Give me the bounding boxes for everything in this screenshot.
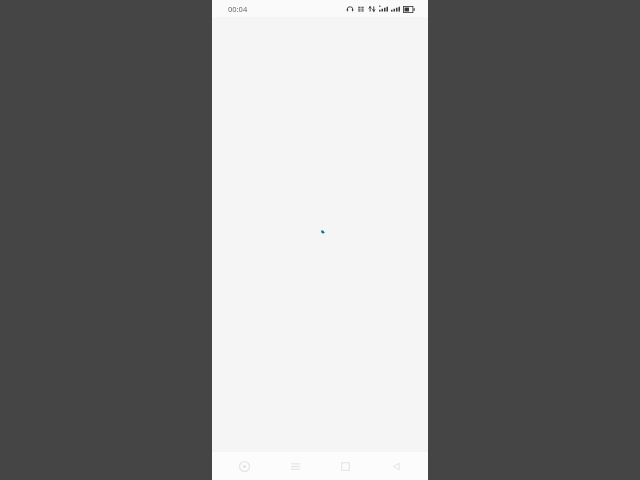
staticText: 00:04 <box>228 4 248 14</box>
button[interactable]: Home <box>327 452 363 480</box>
button[interactable]: Recents <box>226 452 262 480</box>
button[interactable]: Menu <box>277 452 313 480</box>
